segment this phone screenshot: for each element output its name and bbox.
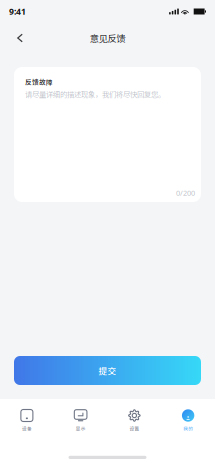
staticText: 提交 (98, 364, 116, 377)
button[interactable]: 设备 (0, 409, 54, 432)
staticText: 0/200 (176, 188, 195, 198)
button[interactable]: 提交 (14, 356, 201, 385)
staticText: 意见反馈 (89, 31, 125, 45)
button[interactable]: 返回 (9, 27, 31, 49)
staticText: 9:41 (9, 6, 26, 17)
staticText: 设置 (129, 425, 139, 432)
staticText: 请尽量详细的描述现象，我们将尽快回复您。 (25, 89, 165, 99)
staticText: 设备 (22, 425, 32, 432)
staticText: 显示 (76, 425, 86, 432)
staticText: 我的 (183, 425, 193, 432)
button[interactable]: 设置 (107, 409, 161, 432)
button[interactable]: 显示 (54, 409, 108, 432)
button[interactable]: 我的 (161, 409, 215, 432)
staticText: 反馈故障 (25, 77, 53, 87)
